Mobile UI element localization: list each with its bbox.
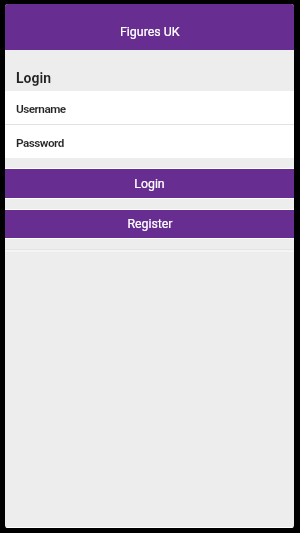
staticText: Password [16,136,64,150]
other: Figures UK [5,4,294,50]
staticText: Register [127,217,173,231]
button[interactable]: Register [5,210,294,238]
staticText: Figures UK [120,24,180,39]
staticText: Username [16,102,66,116]
button[interactable]: Password [5,125,294,158]
staticText: Login [16,70,52,86]
button[interactable]: Login [5,169,294,198]
button[interactable]: Username [5,91,294,124]
staticText: Login [134,177,165,191]
